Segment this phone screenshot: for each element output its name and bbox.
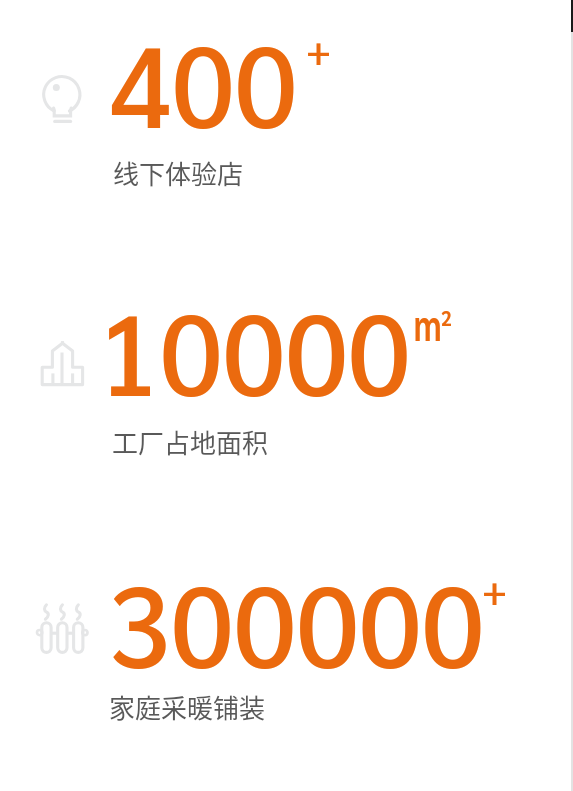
staticText: +	[482, 561, 508, 614]
button[interactable]: 300000+ household heating installations	[0, 556, 573, 791]
staticText: 2	[441, 304, 452, 331]
button[interactable]: 10000 square metre factory area	[0, 290, 573, 540]
staticText: m	[414, 294, 442, 351]
button[interactable]: Light bulb	[37, 70, 89, 124]
button[interactable]: Factory	[37, 337, 89, 391]
button[interactable]: Radiator	[37, 600, 89, 654]
button[interactable]: 400+ offline experience stores	[0, 20, 573, 270]
staticText: 工厂占地面积	[112, 423, 269, 461]
staticText: 线下体验店	[113, 154, 244, 192]
staticText: +	[306, 21, 332, 74]
staticText: 300000	[108, 547, 485, 694]
staticText: 10000	[97, 275, 411, 422]
staticText: 家庭采暖铺装	[109, 688, 266, 726]
staticText: 400	[109, 7, 298, 154]
